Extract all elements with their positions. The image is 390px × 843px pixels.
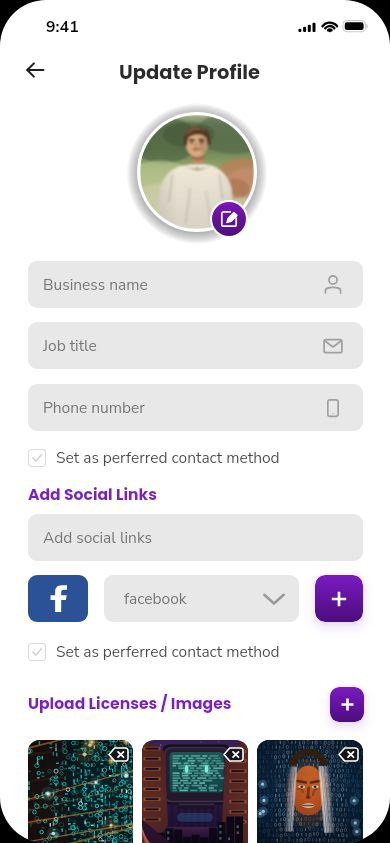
button[interactable]: Set as perferred contact method xyxy=(28,640,363,663)
button[interactable]: Remove image xyxy=(224,748,243,761)
button[interactable]: facebook xyxy=(104,575,299,622)
button[interactable]: Add xyxy=(330,687,364,722)
button[interactable]: Add social links xyxy=(28,514,363,561)
button[interactable]: Job title xyxy=(28,322,363,369)
button[interactable]: Remove image xyxy=(257,740,363,843)
staticText: Update Profile xyxy=(119,59,261,86)
staticText: Add social links xyxy=(43,527,344,548)
staticText: facebook xyxy=(124,588,263,609)
staticText: Upload Licenses / Images xyxy=(28,693,232,715)
button[interactable]: Remove image xyxy=(109,748,128,761)
button[interactable]: Remove image xyxy=(339,748,358,761)
button[interactable]: Remove image xyxy=(28,740,133,843)
staticText: Set as perferred contact method xyxy=(56,447,280,468)
staticText: Set as perferred contact method xyxy=(56,641,280,662)
staticText: Phone number xyxy=(43,397,322,418)
staticText: Job title xyxy=(43,335,322,356)
button[interactable]: Remove image xyxy=(142,740,248,843)
button[interactable]: Facebook xyxy=(28,575,88,622)
staticText: 9:41 xyxy=(46,16,79,38)
button[interactable]: Phone number xyxy=(28,384,363,431)
button[interactable]: Back xyxy=(16,51,54,89)
staticText: Add Social Links xyxy=(28,484,157,506)
button[interactable]: Business name xyxy=(28,261,363,308)
button[interactable]: Set as perferred contact method xyxy=(28,446,363,469)
button[interactable]: Edit profile photo xyxy=(212,202,246,236)
staticText: Business name xyxy=(43,274,322,295)
button[interactable]: Add xyxy=(315,575,363,622)
